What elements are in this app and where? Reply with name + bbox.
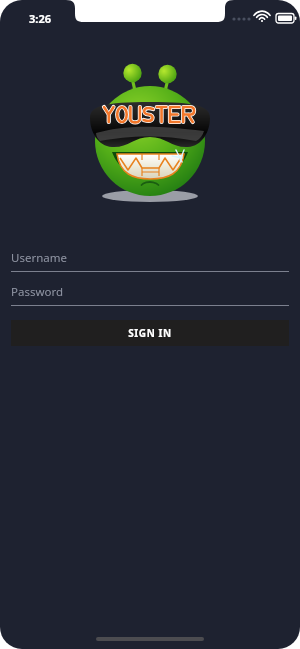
staticText: Password xyxy=(11,284,64,300)
other: Home indicator xyxy=(96,637,204,641)
button[interactable]: SIGN IN xyxy=(11,320,289,346)
button[interactable]: Username xyxy=(11,244,289,272)
button[interactable]: Password xyxy=(11,278,289,306)
staticText: Username xyxy=(11,250,67,266)
staticText: 3:26 xyxy=(29,11,51,26)
staticText: SIGN IN xyxy=(128,326,172,340)
